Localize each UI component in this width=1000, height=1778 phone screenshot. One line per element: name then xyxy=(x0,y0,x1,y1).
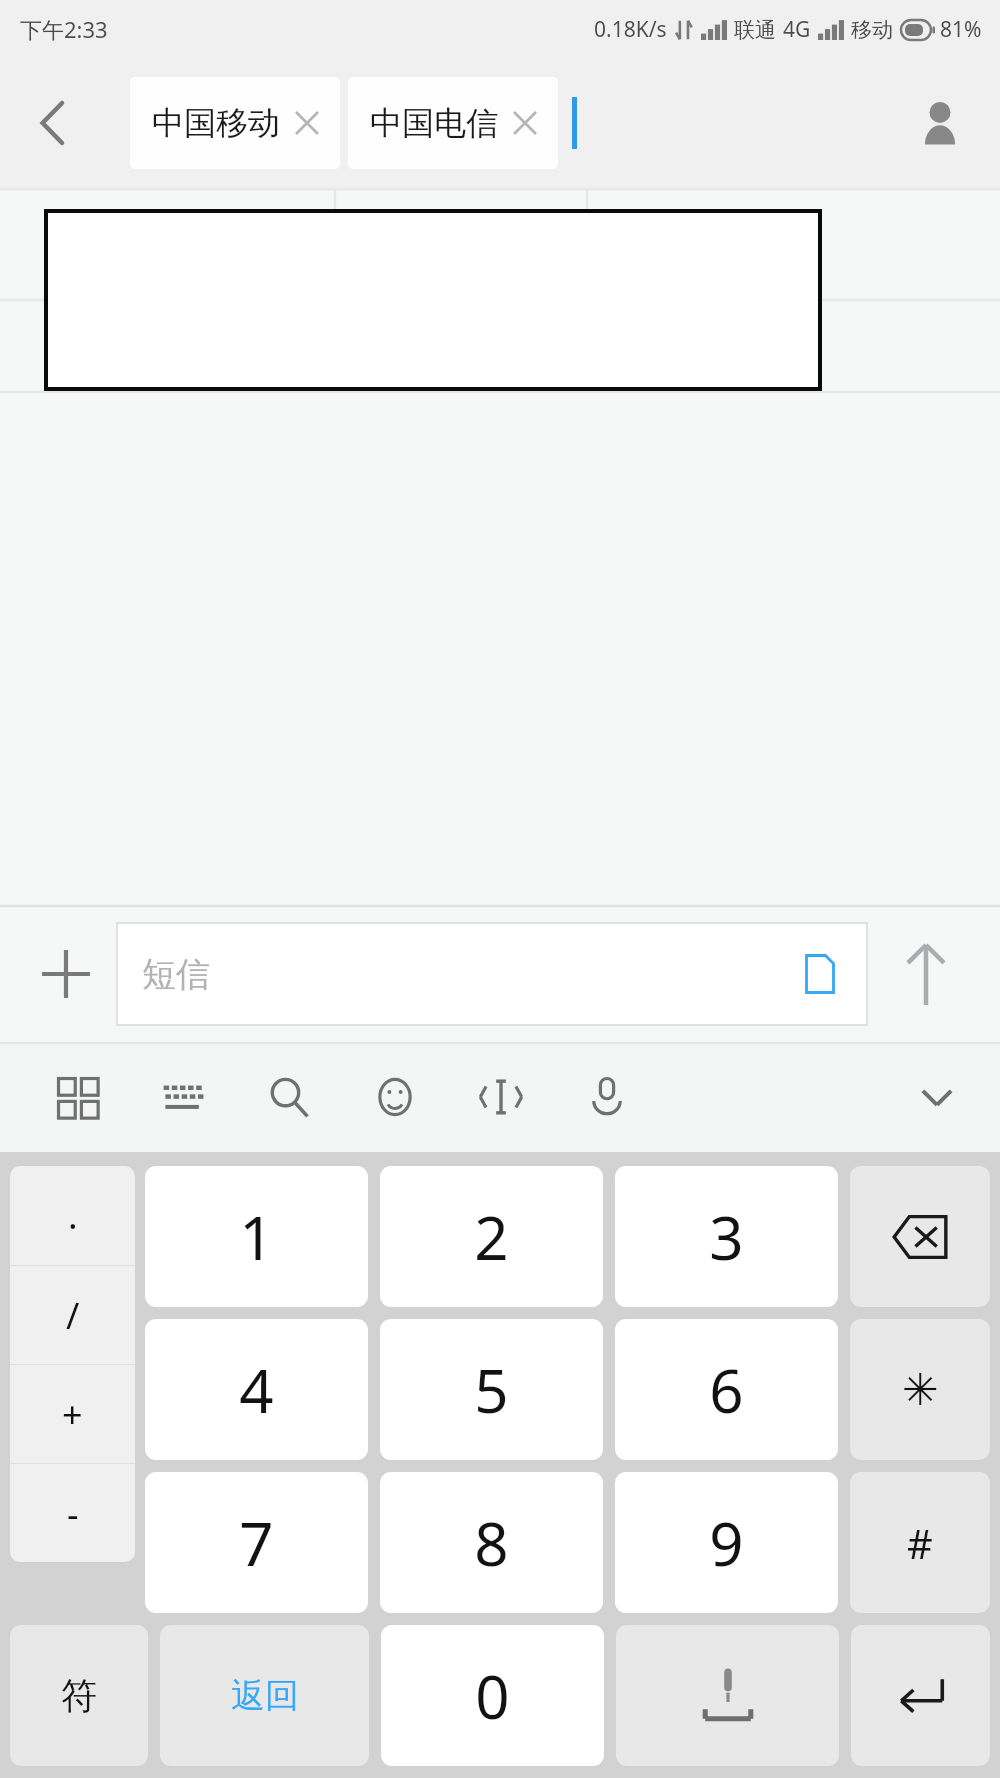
staticText: ✳ xyxy=(902,1364,939,1415)
button[interactable]: Backspace xyxy=(850,1166,990,1307)
staticText: / xyxy=(66,1291,80,1340)
staticText: - xyxy=(67,1489,79,1538)
button[interactable]: 1 xyxy=(145,1166,368,1307)
button[interactable]: 6 xyxy=(615,1319,838,1460)
staticText: 短信 xyxy=(142,953,772,996)
button[interactable]: 8 xyxy=(380,1472,603,1613)
staticText: 0 xyxy=(475,1655,510,1737)
staticText: 2 xyxy=(474,1196,509,1278)
staticText: 3 xyxy=(709,1196,744,1278)
button[interactable]: Move cursor xyxy=(468,1064,534,1130)
button[interactable]: Enter xyxy=(851,1625,990,1766)
staticText: 0.18K/s xyxy=(594,15,667,44)
button[interactable]: 短信 xyxy=(116,922,868,1026)
button[interactable]: Back xyxy=(18,88,88,158)
staticText: 5 xyxy=(474,1349,509,1431)
button[interactable]: . xyxy=(10,1166,135,1265)
button[interactable]: # xyxy=(850,1472,990,1613)
button[interactable]: Hide keyboard xyxy=(904,1064,970,1130)
button[interactable]: - xyxy=(10,1464,135,1562)
staticText: 符 xyxy=(61,1673,97,1718)
button[interactable]: Keyboard xyxy=(150,1064,216,1130)
button[interactable]: 9 xyxy=(615,1472,838,1613)
button[interactable]: + xyxy=(10,1365,135,1463)
staticText: 返回 xyxy=(231,1674,299,1717)
staticText: 联通 xyxy=(734,17,776,43)
button[interactable]: 符 xyxy=(10,1625,148,1766)
button[interactable]: 返回 xyxy=(160,1625,369,1766)
staticText: . xyxy=(68,1191,78,1240)
button[interactable]: Voice input xyxy=(574,1064,640,1130)
staticText: 8 xyxy=(474,1502,509,1584)
button[interactable]: Send xyxy=(868,916,984,1032)
button[interactable]: SIM info xyxy=(772,922,868,1026)
button[interactable]: 中国电信 xyxy=(348,77,558,169)
staticText: 81% xyxy=(940,15,982,44)
button[interactable]: 中国移动 xyxy=(130,77,340,169)
button[interactable]: 5 xyxy=(380,1319,603,1460)
button[interactable]: 0 xyxy=(381,1625,604,1766)
staticText: 1 xyxy=(239,1196,274,1278)
staticText: 9 xyxy=(709,1502,744,1584)
button[interactable]: Contacts xyxy=(902,85,978,161)
button[interactable]: Keyboard layouts xyxy=(44,1064,110,1130)
staticText: 移动 xyxy=(851,17,893,43)
staticText: 7 xyxy=(239,1502,274,1584)
staticText: 中国电信 xyxy=(370,103,498,143)
staticText: # xyxy=(907,1516,933,1570)
button[interactable]: Search xyxy=(256,1064,322,1130)
staticText: + xyxy=(62,1390,83,1439)
button[interactable]: 2 xyxy=(380,1166,603,1307)
button[interactable]: Add attachment xyxy=(16,924,116,1024)
staticText: 中国移动 xyxy=(152,103,280,143)
button[interactable]: ✳ xyxy=(850,1319,990,1460)
button[interactable]: Emoji xyxy=(362,1064,428,1130)
button[interactable]: 7 xyxy=(145,1472,368,1613)
staticText: 6 xyxy=(709,1349,744,1431)
button[interactable]: Voice and space xyxy=(616,1625,839,1766)
button[interactable]: 4 xyxy=(145,1319,368,1460)
staticText: 下午2:33 xyxy=(20,14,108,44)
staticText: 4G xyxy=(783,15,811,44)
button[interactable]: 3 xyxy=(615,1166,838,1307)
button[interactable]: / xyxy=(10,1266,135,1364)
staticText: 4 xyxy=(239,1349,274,1431)
